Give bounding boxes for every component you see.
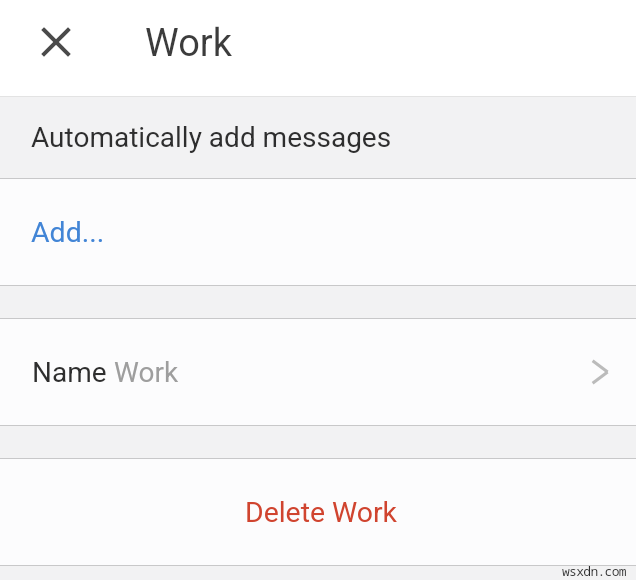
- button[interactable]: Add...: [0, 179, 636, 285]
- staticText: Delete Work: [245, 496, 397, 529]
- staticText: Name: [32, 356, 114, 389]
- staticText: Work: [145, 21, 232, 66]
- staticText: Automatically add messages: [31, 121, 392, 154]
- staticText: Work: [114, 356, 179, 389]
- staticText: Add...: [31, 216, 105, 249]
- button[interactable]: Delete Work: [0, 459, 636, 565]
- staticText: wsxdn.com: [562, 562, 626, 576]
- button[interactable]: Name: [0, 319, 636, 425]
- button[interactable]: Close: [32, 18, 80, 66]
